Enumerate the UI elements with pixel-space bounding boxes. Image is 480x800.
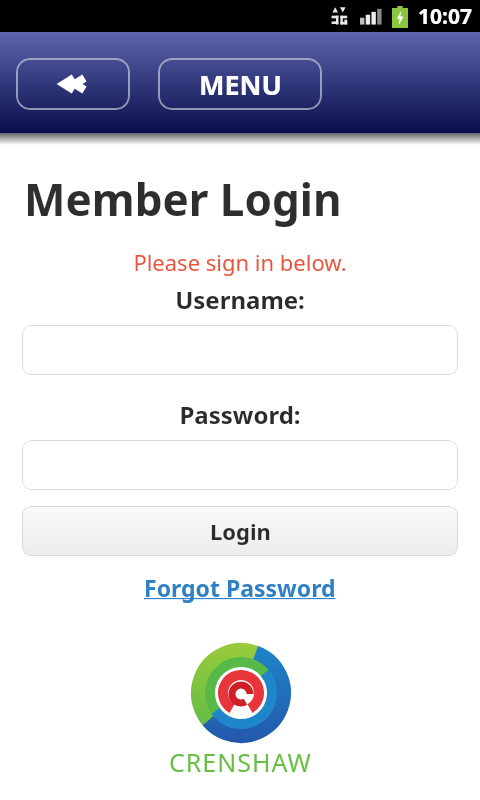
button[interactable]: MENU [158,58,322,110]
staticText: CRENSHAW [169,745,312,779]
staticText: Login [210,516,271,546]
button[interactable]: Text field [22,440,458,490]
button[interactable]: Login [22,506,458,556]
staticText: Password: [0,398,480,431]
staticText: Username: [0,283,480,316]
staticText: Member Login [24,169,342,229]
staticText: Forgot Password [144,572,336,603]
staticText: 10:07 [418,2,472,31]
staticText: MENU [199,66,282,103]
staticText: Please sign in below. [0,247,480,277]
button[interactable]: Back [16,58,130,110]
button[interactable]: Forgot Password [136,570,344,605]
button[interactable]: Text field [22,325,458,375]
